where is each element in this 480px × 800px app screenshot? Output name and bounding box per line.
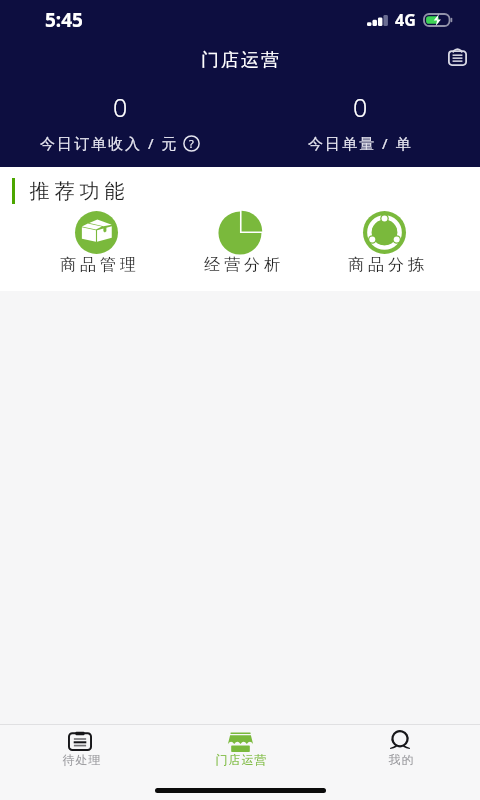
staticText: 待处理: [62, 752, 101, 767]
button[interactable]: 我的: [320, 725, 480, 777]
button[interactable]: 说明: [183, 135, 200, 152]
staticText: 今日单量 / 单: [308, 133, 413, 153]
button[interactable]: 商品管理: [24, 211, 168, 275]
staticText: 5:45: [45, 7, 83, 33]
staticText: 经营分析: [202, 255, 282, 275]
staticText: 推荐功能: [27, 179, 127, 204]
staticText: 0: [353, 90, 368, 124]
button[interactable]: 门店运营: [160, 725, 320, 777]
staticText: 0: [113, 90, 128, 124]
button[interactable]: 商品分拣: [312, 211, 456, 275]
staticText: ?: [189, 136, 194, 151]
button[interactable]: 订单: [439, 39, 475, 75]
staticText: 我的: [388, 752, 414, 767]
button[interactable]: 0: [0, 76, 240, 167]
button[interactable]: 0: [240, 76, 480, 167]
staticText: 门店运营: [215, 752, 267, 767]
staticText: 商品分拣: [346, 255, 426, 275]
button[interactable]: 经营分析: [168, 211, 312, 275]
staticText: 4G: [395, 9, 416, 31]
staticText: 门店运营: [200, 49, 280, 72]
button[interactable]: 待处理: [0, 725, 160, 777]
staticText: 商品管理: [58, 255, 138, 275]
staticText: 今日订单收入 / 元: [40, 133, 179, 153]
